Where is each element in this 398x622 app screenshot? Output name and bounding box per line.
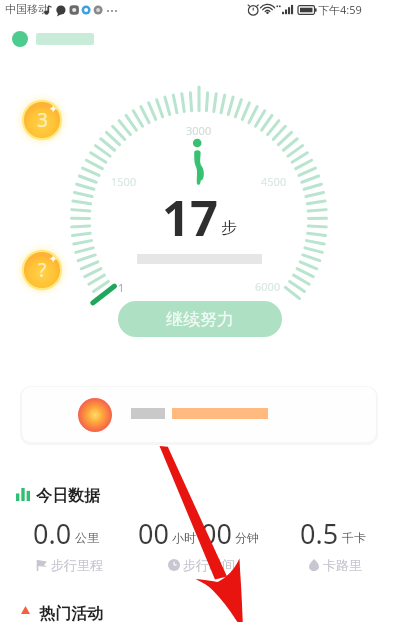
staticText: 00 xyxy=(201,515,232,549)
staticText: 继续努力 xyxy=(166,309,234,330)
staticText: 4500 xyxy=(261,174,287,189)
staticText: 小时 xyxy=(172,530,196,545)
staticText: 0.5 xyxy=(300,515,339,549)
staticText: 今日数据 xyxy=(36,486,100,506)
staticText: 17 xyxy=(162,184,219,251)
staticText: 1500 xyxy=(111,174,137,189)
staticText: 00 xyxy=(138,515,169,549)
button[interactable]: 继续努力 xyxy=(118,301,282,337)
staticText: 步行时间 xyxy=(183,557,235,573)
staticText: 中国移动 xyxy=(5,2,49,16)
staticText: 卡路里 xyxy=(323,557,362,573)
staticText: 3 xyxy=(37,107,48,133)
staticText: 1 xyxy=(118,280,125,295)
button[interactable] xyxy=(22,387,376,442)
button[interactable]: Reward ? xyxy=(14,242,70,298)
staticText: 热门活动 xyxy=(39,604,103,622)
staticText: 分钟 xyxy=(235,530,259,545)
staticText: 千卡 xyxy=(342,530,366,545)
staticText: 步 xyxy=(221,218,237,238)
button[interactable]: Reward 3 xyxy=(14,92,70,148)
staticText: 下午4:59 xyxy=(318,2,362,17)
staticText: ? xyxy=(38,257,47,283)
staticText: 0.0 xyxy=(33,515,72,549)
staticText: 6000 xyxy=(255,279,281,294)
staticText: 步行里程 xyxy=(51,557,103,573)
staticText: 3000 xyxy=(186,123,212,138)
staticText: 公里 xyxy=(75,530,99,545)
